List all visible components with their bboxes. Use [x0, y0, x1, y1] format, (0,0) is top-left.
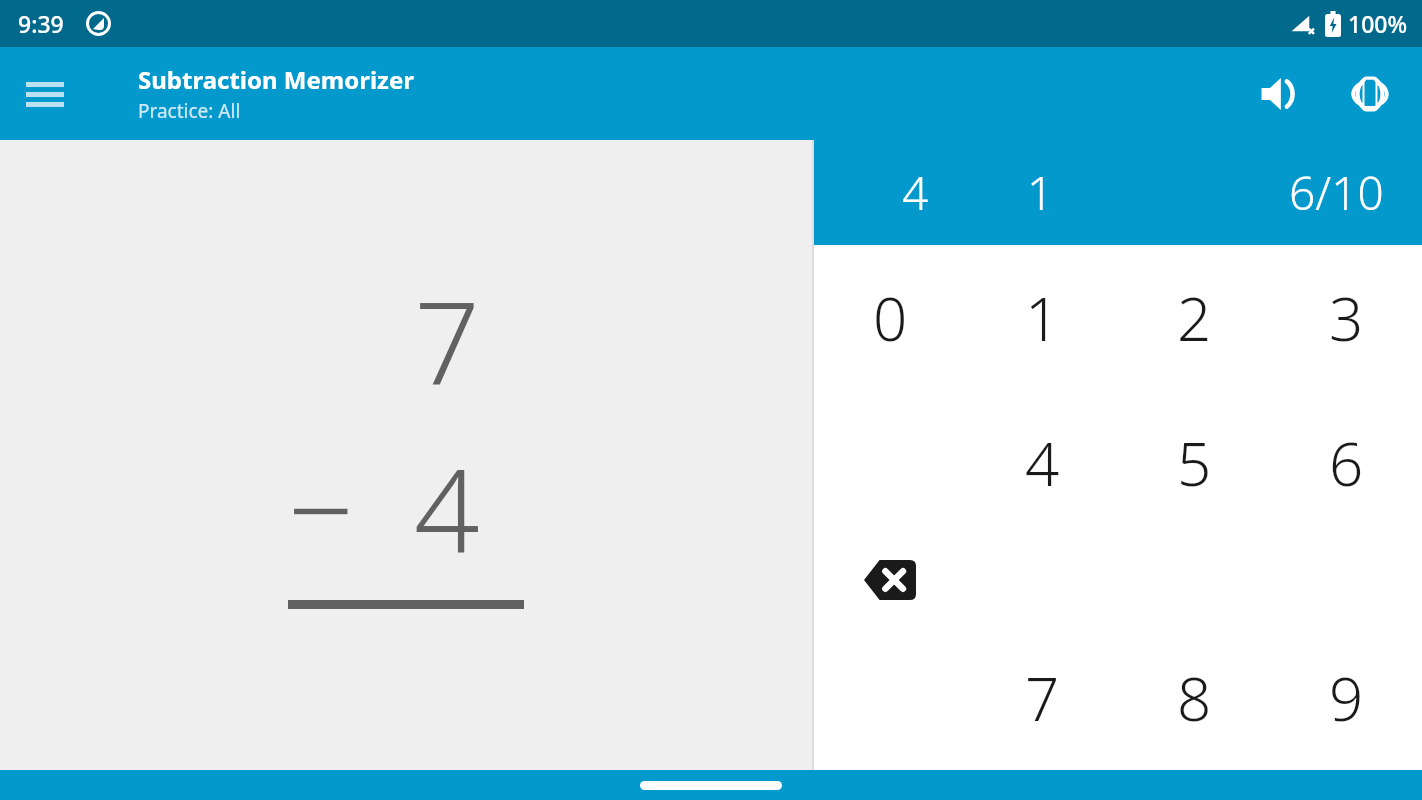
button[interactable]: 8 [1118, 625, 1270, 770]
staticText: 4 [902, 161, 929, 224]
staticText: Subtraction Memorizer [138, 63, 414, 96]
button[interactable]: 9 [1270, 625, 1422, 770]
staticText: − [288, 429, 354, 586]
staticText: 7 [1025, 657, 1060, 739]
button[interactable]: 3 [1270, 245, 1422, 390]
button[interactable]: Toggle sound [1248, 62, 1312, 126]
button[interactable]: 4 [966, 390, 1118, 535]
staticText: 7 [414, 262, 480, 419]
button[interactable]: Backspace [814, 535, 966, 625]
button[interactable]: Toggle vibration [1338, 62, 1402, 126]
button[interactable]: 7 [966, 625, 1118, 770]
staticText: 9 [1329, 657, 1364, 739]
staticText: 3 [1329, 277, 1364, 359]
staticText: Practice: All [138, 98, 241, 124]
staticText: 1 [1025, 277, 1060, 359]
staticText: 0 [873, 277, 908, 359]
staticText: 4 [414, 429, 480, 586]
staticText: 8 [1177, 657, 1212, 739]
button[interactable]: Home gesture bar [640, 781, 782, 790]
button[interactable]: 6 [1270, 390, 1422, 535]
staticText: 5 [1177, 422, 1212, 504]
button[interactable]: 5 [1118, 390, 1270, 535]
button[interactable]: 1 [966, 245, 1118, 390]
button[interactable]: 2 [1118, 245, 1270, 390]
staticText: 2 [1177, 277, 1212, 359]
button[interactable]: 0 [814, 245, 966, 390]
staticText: 9:39 [18, 8, 64, 39]
button[interactable]: Open navigation menu [14, 63, 76, 125]
staticText: 4 [1025, 422, 1060, 504]
staticText: 6 [1329, 422, 1364, 504]
staticText: 100% [1348, 8, 1408, 39]
staticText: 1 [1027, 161, 1054, 224]
staticText: 6/10 [1289, 161, 1384, 224]
